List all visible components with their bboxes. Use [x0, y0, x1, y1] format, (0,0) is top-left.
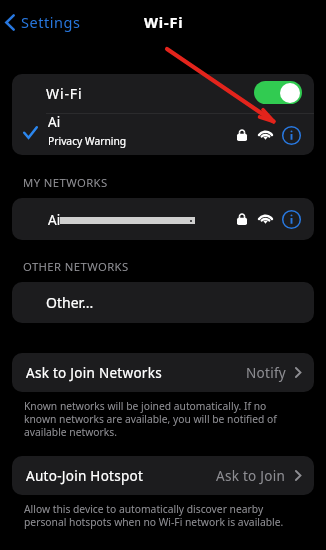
staticText: Ask to Join [216, 467, 286, 485]
staticText: Ai [48, 211, 61, 229]
button[interactable]: Network info [281, 125, 301, 145]
staticText: Other... [46, 293, 94, 312]
staticText: Wi-Fi [144, 12, 184, 32]
button[interactable]: Wi-Fi on [254, 81, 302, 104]
button[interactable]: Other... [12, 282, 314, 323]
button[interactable]: Network info [281, 209, 301, 229]
button[interactable]: Wi-Fi [12, 74, 314, 113]
button[interactable]: Ai [12, 198, 314, 240]
staticText: Ask to Join Networks [26, 364, 162, 382]
staticText: Known networks will be joined automatica… [24, 399, 290, 439]
staticText: Allow this device to automatically disco… [24, 502, 290, 529]
button[interactable]: Ai [12, 114, 314, 155]
staticText: Wi-Fi [46, 84, 83, 103]
staticText: Settings [21, 12, 81, 32]
staticText: OTHER NETWORKS [23, 259, 129, 274]
button[interactable]: Auto-Join Hotspot [12, 456, 314, 495]
staticText: MY NETWORKS [23, 175, 108, 190]
staticText: Ai [48, 113, 61, 131]
staticText: Notify [246, 364, 286, 382]
staticText: Auto-Join Hotspot [26, 467, 144, 485]
button[interactable]: Ask to Join Networks [12, 353, 314, 392]
button[interactable]: Settings [0, 6, 91, 38]
staticText: Privacy Warning [48, 134, 127, 148]
